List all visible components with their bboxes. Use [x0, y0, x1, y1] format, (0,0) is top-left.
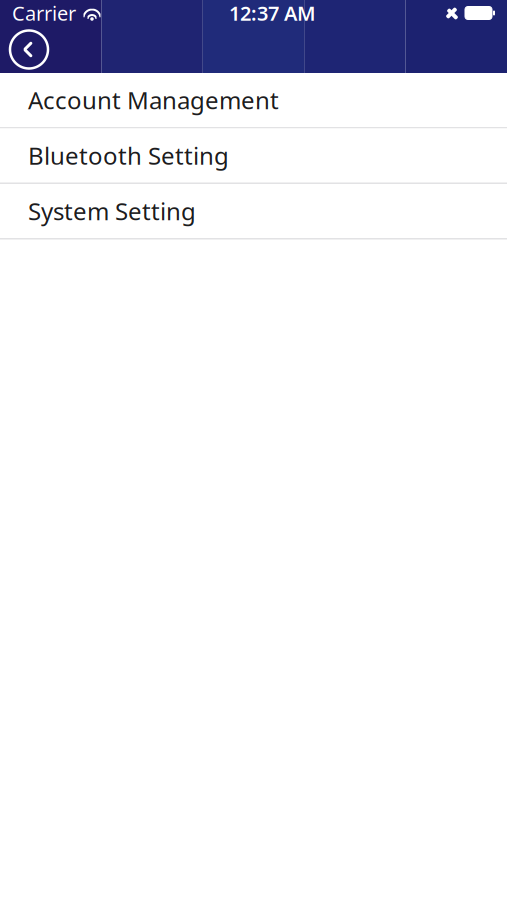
button[interactable]: Bluetooth Setting — [0, 128, 507, 184]
staticText: Bluetooth Setting — [28, 140, 229, 171]
staticText: System Setting — [28, 195, 196, 227]
button[interactable]: Back — [5, 27, 53, 71]
staticText: Account Management — [28, 84, 279, 116]
staticText: Carrier — [12, 0, 76, 26]
staticText: 12:37 AM — [229, 0, 316, 26]
button[interactable]: Account Management — [0, 73, 507, 128]
button[interactable]: System Setting — [0, 184, 507, 239]
